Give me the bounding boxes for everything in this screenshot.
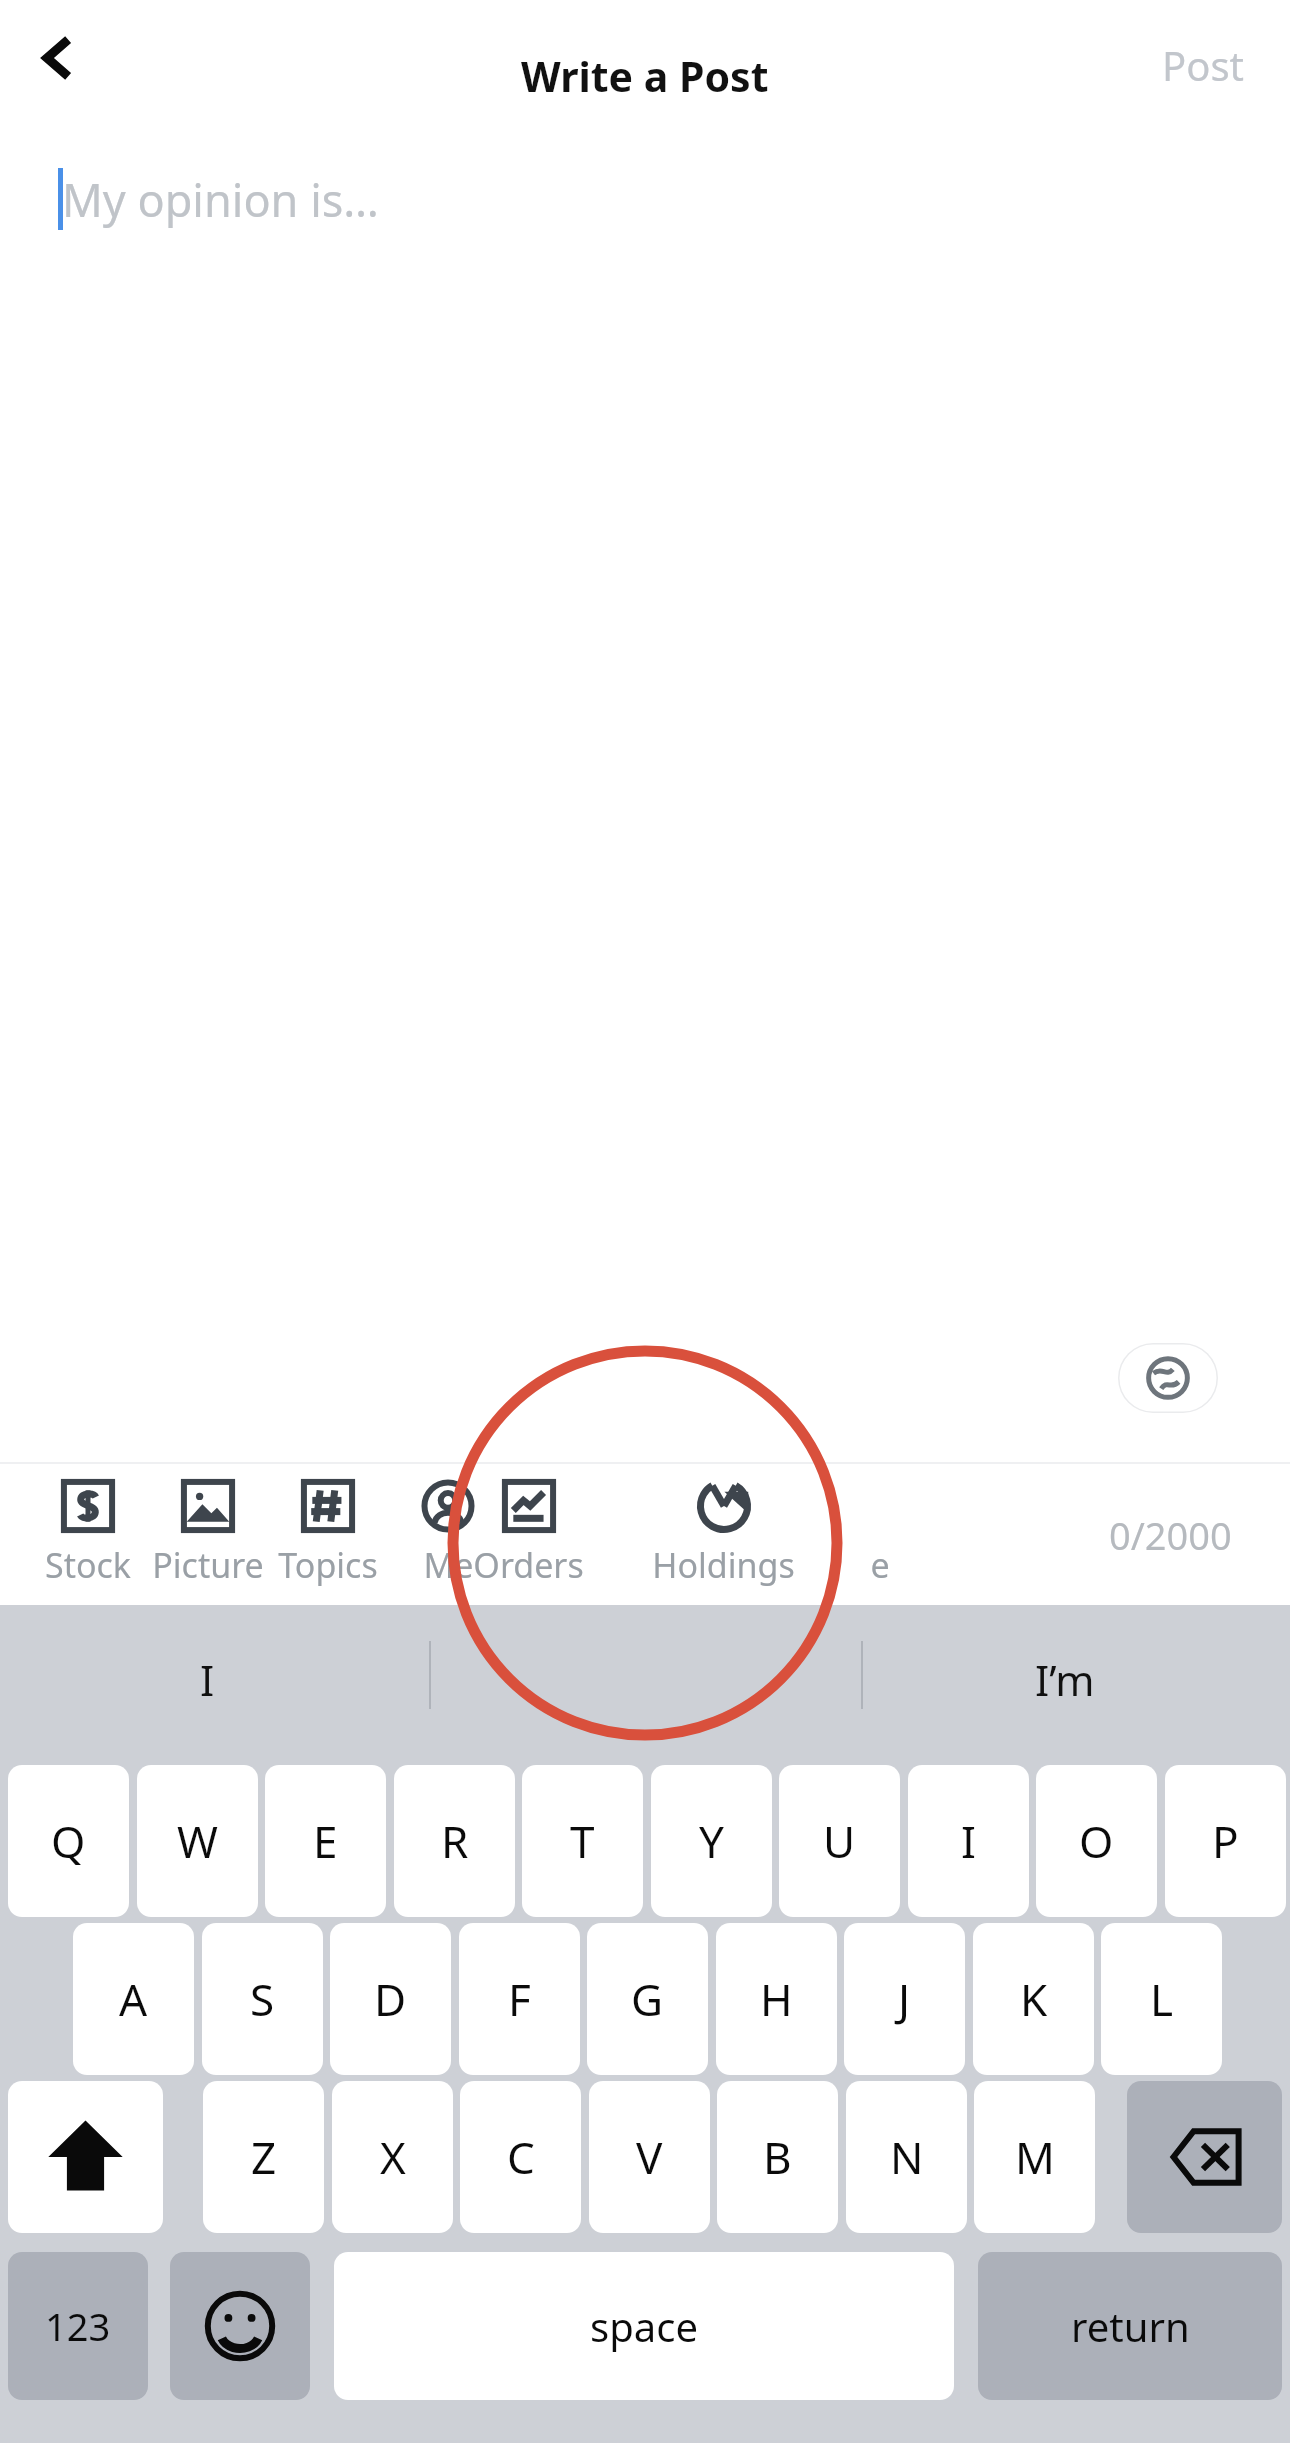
staticText: H	[760, 1969, 793, 2029]
staticText: J	[898, 1969, 911, 2029]
button[interactable]: Orders	[453, 1464, 603, 1605]
button[interactable]: R	[394, 1765, 515, 1917]
button[interactable]: My opinion is…	[0, 155, 1290, 1455]
button[interactable]: D	[330, 1923, 451, 2075]
staticText: I	[961, 1811, 976, 1871]
button[interactable]: W	[137, 1765, 258, 1917]
button[interactable]: I	[908, 1765, 1029, 1917]
staticText: L	[1150, 1969, 1174, 2029]
button[interactable]: Holdings	[648, 1464, 798, 1605]
button[interactable]: Visibility: Public	[1118, 1343, 1218, 1413]
button[interactable]: G	[587, 1923, 708, 2075]
staticText: P	[1212, 1811, 1239, 1871]
staticText: D	[374, 1969, 407, 2029]
staticText: B	[763, 2127, 792, 2187]
staticText: U	[823, 1811, 856, 1871]
staticText: K	[1020, 1969, 1048, 2029]
button[interactable]: U	[779, 1765, 900, 1917]
button[interactable]: C	[460, 2081, 581, 2233]
staticText: e	[870, 1542, 890, 1588]
staticText: I	[200, 1651, 215, 1708]
button[interactable]: M	[974, 2081, 1095, 2233]
button[interactable]: Back	[20, 20, 96, 96]
staticText: Me	[423, 1542, 474, 1588]
button[interactable]: Stock	[13, 1464, 163, 1605]
button[interactable]: S	[202, 1923, 323, 2075]
staticText: W	[177, 1811, 218, 1871]
button[interactable]: H	[716, 1923, 837, 2075]
staticText: M	[1015, 2127, 1055, 2187]
staticText: Write a Post	[521, 48, 769, 104]
staticText: V	[636, 2127, 663, 2187]
button[interactable]: e	[805, 1464, 955, 1605]
button[interactable]: T	[522, 1765, 643, 1917]
button[interactable]: Post	[1146, 28, 1260, 102]
staticText: F	[508, 1969, 531, 2029]
button[interactable]: O	[1036, 1765, 1157, 1917]
button[interactable]: Q	[8, 1765, 129, 1917]
button[interactable]: J	[844, 1923, 965, 2075]
staticText: Post	[1162, 38, 1244, 92]
staticText: Stock	[45, 1542, 131, 1588]
button[interactable]: Shift	[8, 2081, 163, 2233]
button[interactable]: Z	[203, 2081, 324, 2233]
staticText: C	[507, 2127, 535, 2187]
button[interactable]: 123	[8, 2252, 148, 2400]
staticText: A	[119, 1969, 148, 2029]
staticText: G	[631, 1969, 664, 2029]
button[interactable]: P	[1165, 1765, 1286, 1917]
staticText: S	[250, 1969, 275, 2029]
staticText: X	[380, 2127, 406, 2187]
button[interactable]: Backspace	[1127, 2081, 1282, 2233]
staticText: E	[313, 1811, 338, 1871]
staticText: return	[1071, 2299, 1190, 2353]
staticText: Holdings	[652, 1542, 795, 1588]
button[interactable]: Picture	[133, 1464, 283, 1605]
button[interactable]: V	[589, 2081, 710, 2233]
staticText: space	[590, 2299, 698, 2353]
staticText: O	[1079, 1811, 1114, 1871]
staticText: Orders	[473, 1542, 584, 1588]
staticText: Topics	[278, 1542, 378, 1588]
button[interactable]: N	[846, 2081, 967, 2233]
button[interactable]: X	[332, 2081, 453, 2233]
staticText: 123	[45, 2300, 111, 2352]
staticText: 0/2000	[1109, 1509, 1232, 1561]
staticText: Q	[51, 1811, 86, 1871]
button[interactable]: Me	[373, 1464, 523, 1605]
button[interactable]: Topics	[253, 1464, 403, 1605]
staticText: T	[570, 1811, 595, 1871]
button[interactable]: Emoji	[170, 2252, 310, 2400]
staticText: I’m	[1035, 1651, 1095, 1708]
button[interactable]: return	[978, 2252, 1282, 2400]
staticText: N	[890, 2127, 924, 2187]
button[interactable]: A	[73, 1923, 194, 2075]
button[interactable]: E	[265, 1765, 386, 1917]
staticText: R	[441, 1811, 469, 1871]
staticText: Picture	[152, 1542, 264, 1588]
button[interactable]: space	[334, 2252, 954, 2400]
button[interactable]: B	[717, 2081, 838, 2233]
staticText: My opinion is…	[62, 169, 379, 230]
button[interactable]: F	[459, 1923, 580, 2075]
staticText: Z	[251, 2127, 277, 2187]
staticText: Y	[699, 1811, 724, 1871]
button[interactable]: Y	[651, 1765, 772, 1917]
button[interactable]: K	[973, 1923, 1094, 2075]
button[interactable]: L	[1101, 1923, 1222, 2075]
